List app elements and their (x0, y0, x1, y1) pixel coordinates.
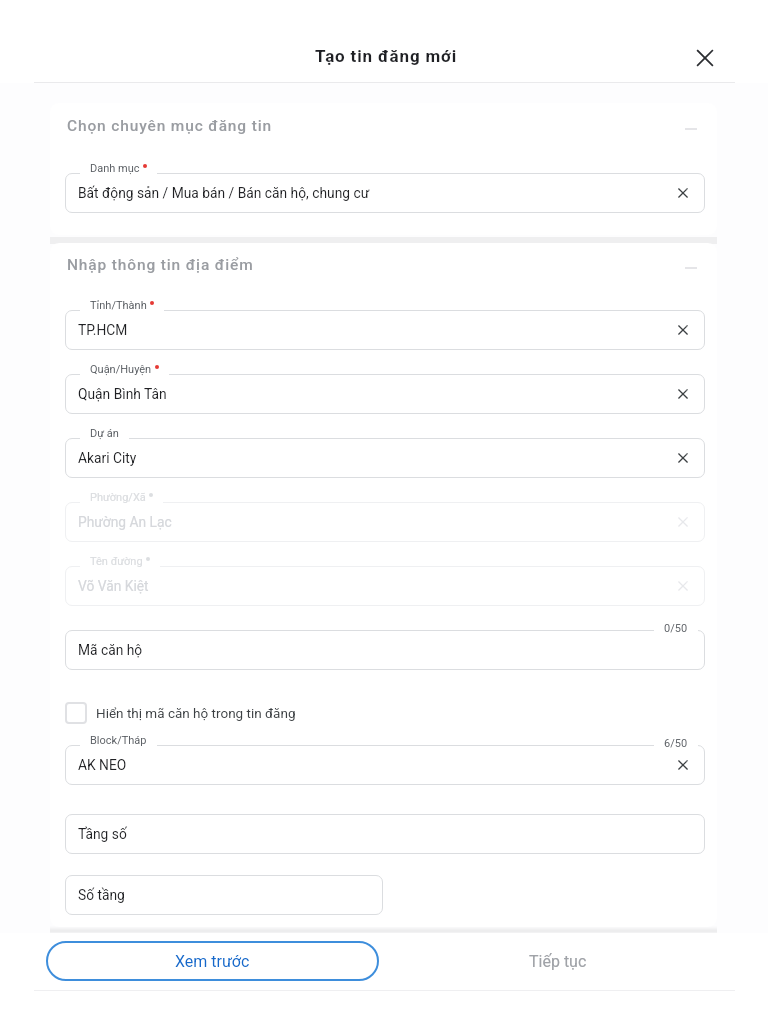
button[interactable]: TP.HCM (65, 310, 705, 350)
staticText: Akari City (78, 450, 137, 466)
staticText: Mã căn hộ (78, 642, 143, 658)
button[interactable]: Võ Văn Kiệt (65, 566, 705, 606)
staticText: Số tầng (78, 887, 125, 903)
staticText: TP.HCM (78, 322, 128, 338)
button[interactable]: AK NEO (65, 745, 705, 785)
staticText: Dự án (90, 427, 119, 440)
staticText: Block/Tháp (90, 734, 147, 747)
button[interactable]: Akari City (65, 438, 705, 478)
button[interactable]: Hiển thị mã căn hộ trong tin đăng (65, 694, 296, 732)
staticText: AK NEO (78, 757, 127, 773)
button[interactable]: Close (689, 42, 721, 74)
staticText: Tiếp tục (529, 952, 587, 971)
staticText: Quận/Huyện (90, 363, 152, 376)
button[interactable]: Xem trước (46, 941, 379, 981)
button[interactable]: Phường An Lạc (65, 502, 705, 542)
button[interactable]: Clear (672, 511, 694, 533)
staticText: Chọn chuyên mục đăng tin (67, 117, 676, 135)
staticText: Danh mục (90, 162, 140, 175)
staticText: Tên đường (90, 555, 143, 568)
button[interactable]: Clear (672, 383, 694, 405)
staticText: Nhập thông tin địa điểm (67, 256, 676, 274)
staticText: Võ Văn Kiệt (78, 578, 149, 594)
button[interactable]: Mã căn hộ (65, 630, 705, 670)
button[interactable]: Collapse section (676, 254, 700, 276)
staticText: Xem trước (175, 952, 250, 971)
button[interactable]: Bất động sản / Mua bán / Bán căn hộ, chu… (65, 173, 705, 213)
button[interactable]: Quận Bình Tân (65, 374, 705, 414)
staticText: Phường/Xã (90, 491, 146, 504)
staticText: Tầng số (78, 826, 127, 842)
staticText: 6/50 (664, 737, 688, 750)
staticText: Tạo tin đăng mới (315, 46, 458, 66)
button[interactable]: Clear (672, 754, 694, 776)
button[interactable]: Tầng số (65, 814, 705, 854)
button[interactable]: Clear (672, 182, 694, 204)
staticText: 0/50 (664, 622, 688, 635)
button[interactable]: Clear (672, 447, 694, 469)
button[interactable]: Clear (672, 575, 694, 597)
staticText: Tỉnh/Thành (90, 299, 147, 312)
button[interactable]: Số tầng (65, 875, 383, 915)
staticText: Phường An Lạc (78, 514, 172, 530)
staticText: Bất động sản / Mua bán / Bán căn hộ, chu… (78, 185, 370, 201)
staticText: Quận Bình Tân (78, 386, 167, 402)
staticText: Hiển thị mã căn hộ trong tin đăng (96, 705, 296, 721)
button[interactable]: Clear (672, 319, 694, 341)
button[interactable]: Tiếp tục (392, 941, 724, 981)
button[interactable]: Collapse section (676, 115, 700, 137)
